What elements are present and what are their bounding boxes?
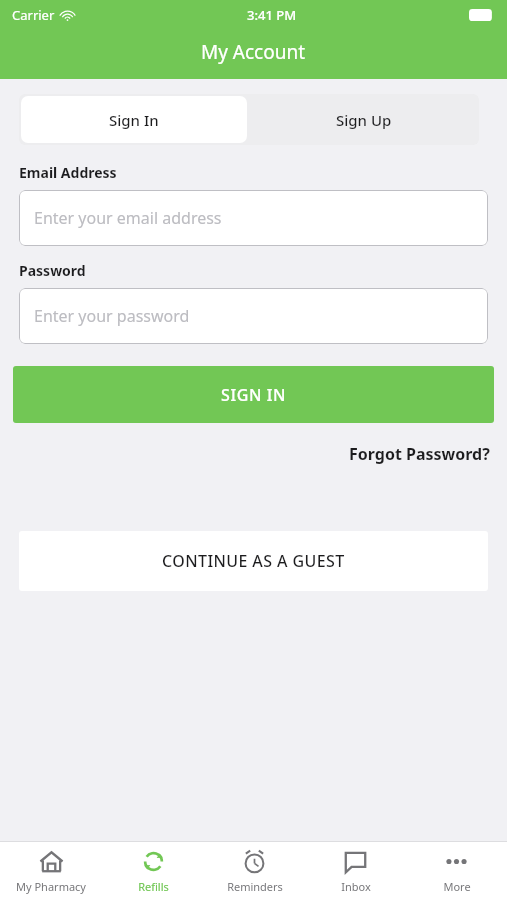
button[interactable]: My Pharmacy — [0, 842, 102, 900]
button[interactable]: Refills — [102, 842, 204, 900]
staticText: 3:41 PM — [247, 6, 297, 24]
button[interactable]: Enter your email address — [19, 190, 488, 246]
staticText: Refills — [138, 879, 169, 894]
staticText: Forgot Password? — [349, 443, 490, 465]
button[interactable]: CONTINUE AS A GUEST — [19, 531, 488, 591]
button[interactable]: Sign In — [21, 96, 247, 143]
staticText: Email Address — [19, 163, 117, 182]
staticText: SIGN IN — [221, 384, 286, 406]
staticText: My Pharmacy — [16, 879, 86, 894]
button[interactable]: Inbox — [305, 842, 406, 900]
staticText: Carrier — [12, 6, 55, 24]
button[interactable]: SIGN IN — [13, 366, 494, 423]
staticText: My Account — [201, 39, 306, 65]
button[interactable]: More — [406, 842, 507, 900]
staticText: Sign Up — [336, 110, 392, 130]
staticText: CONTINUE AS A GUEST — [162, 550, 345, 572]
staticText: Reminders — [227, 879, 283, 894]
button[interactable]: Forgot Password? — [345, 439, 494, 469]
button[interactable]: Enter your password — [19, 288, 488, 344]
staticText: Password — [19, 261, 86, 280]
staticText: More — [443, 879, 471, 894]
staticText: Inbox — [341, 879, 371, 894]
button[interactable]: Sign Up — [249, 94, 479, 145]
staticText: Enter your email address — [34, 207, 222, 229]
staticText: Enter your password — [34, 305, 190, 327]
staticText: Sign In — [109, 110, 159, 130]
button[interactable]: Reminders — [204, 842, 305, 900]
